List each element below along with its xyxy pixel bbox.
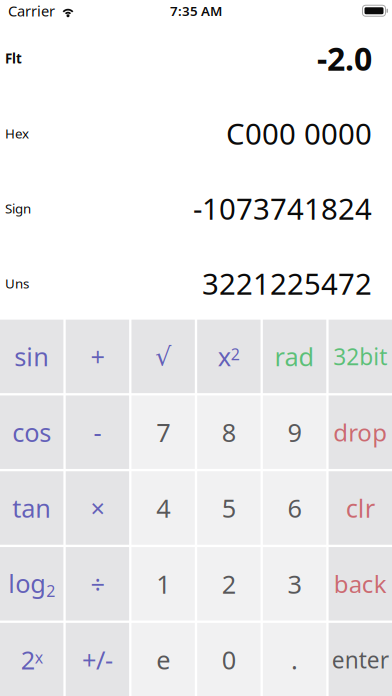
button[interactable]: 0 — [197, 623, 261, 696]
button[interactable]: 6 — [263, 471, 326, 545]
button[interactable]: 7 — [131, 395, 195, 469]
staticText: Sign — [5, 199, 31, 217]
button[interactable]: 1 — [131, 547, 195, 620]
staticText: 7 — [156, 415, 170, 449]
button[interactable]: clr — [329, 471, 392, 545]
staticText: enter — [332, 644, 389, 675]
staticText: 6 — [288, 491, 302, 525]
button[interactable]: sin — [0, 320, 63, 393]
staticText: e — [156, 643, 170, 676]
staticText: 32bit — [333, 341, 387, 371]
staticText: 9 — [288, 415, 302, 449]
staticText: Flt — [5, 49, 22, 67]
staticText: × — [90, 491, 104, 525]
button[interactable]: x2 — [197, 320, 261, 393]
staticText: -1073741824 — [193, 189, 372, 228]
staticText: 3 — [288, 567, 302, 601]
button[interactable]: 2x — [0, 623, 63, 696]
staticText: log2 — [8, 566, 55, 601]
button[interactable]: log2 — [0, 547, 63, 620]
staticText: +/- — [82, 643, 113, 676]
button[interactable]: √ — [131, 320, 195, 393]
staticText: Uns — [5, 274, 29, 292]
staticText: - — [93, 415, 101, 449]
button[interactable]: 8 — [197, 395, 261, 469]
button[interactable]: 9 — [263, 395, 326, 469]
staticText: rad — [275, 340, 315, 373]
button[interactable]: + — [66, 320, 129, 393]
button[interactable]: back — [329, 547, 392, 620]
staticText: 2 — [222, 567, 236, 601]
staticText: 0 — [222, 643, 236, 676]
button[interactable]: 2 — [197, 547, 261, 620]
staticText: + — [90, 340, 104, 373]
button[interactable]: - — [66, 395, 129, 469]
button[interactable]: × — [66, 471, 129, 545]
staticText: Carrier — [8, 1, 55, 20]
staticText: Hex — [5, 124, 29, 142]
button[interactable]: ÷ — [66, 547, 129, 620]
staticText: back — [334, 568, 387, 600]
button[interactable]: drop — [329, 395, 392, 469]
staticText: clr — [346, 491, 375, 525]
button[interactable]: 32bit — [329, 320, 392, 393]
button[interactable]: 5 — [197, 471, 261, 545]
button[interactable]: cos — [0, 395, 63, 469]
staticText: tan — [12, 491, 51, 525]
staticText: 2x — [21, 643, 43, 676]
staticText: drop — [333, 416, 387, 448]
button[interactable]: e — [131, 623, 195, 696]
button[interactable]: . — [263, 623, 326, 696]
staticText: x2 — [218, 340, 240, 373]
staticText: 4 — [156, 491, 170, 525]
staticText: . — [291, 643, 298, 676]
button[interactable]: 4 — [131, 471, 195, 545]
button[interactable]: 3 — [263, 547, 326, 620]
button[interactable]: +/- — [66, 623, 129, 696]
staticText: C000 0000 — [226, 114, 372, 153]
button[interactable]: rad — [263, 320, 326, 393]
staticText: 7:35 AM — [170, 2, 222, 20]
staticText: ÷ — [90, 567, 104, 601]
staticText: -2.0 — [317, 37, 372, 79]
staticText: cos — [12, 415, 51, 449]
staticText: 3221225472 — [202, 264, 372, 303]
button[interactable]: tan — [0, 471, 63, 545]
staticText: 1 — [156, 567, 170, 601]
staticText: 5 — [222, 491, 236, 525]
staticText: sin — [14, 340, 49, 373]
staticText: 8 — [222, 415, 236, 449]
button[interactable]: enter — [329, 623, 392, 696]
staticText: √ — [155, 342, 171, 371]
